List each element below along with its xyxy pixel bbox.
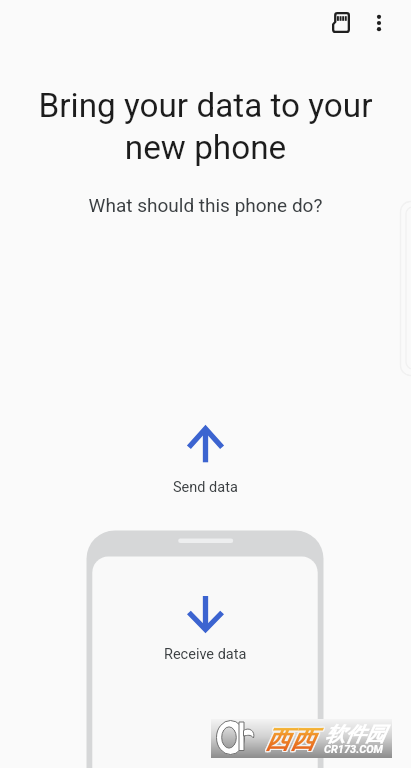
staticText: 西西 [265,724,315,755]
staticText: Send data [173,479,238,496]
button[interactable]: Receive data [150,590,261,670]
staticText: 软件园 [325,722,385,747]
staticText: 西西 [265,723,315,754]
staticText: Receive data [164,646,247,663]
staticText: What should this phone do? [0,194,411,216]
staticText: 西西 [266,725,316,756]
staticText: CR173.COM [324,743,383,756]
staticText: 西西 [264,725,314,756]
button[interactable]: Send data [150,420,261,500]
staticText: 西西 [266,724,316,755]
staticText: 西西 [266,723,316,754]
staticText: 西西 [265,725,315,756]
staticText: 西西 [264,723,314,754]
button[interactable]: SD card [319,0,363,44]
staticText: 西西 [264,724,314,755]
button[interactable]: More options [359,3,399,43]
staticText: Bring your data to your new phone [24,86,387,167]
